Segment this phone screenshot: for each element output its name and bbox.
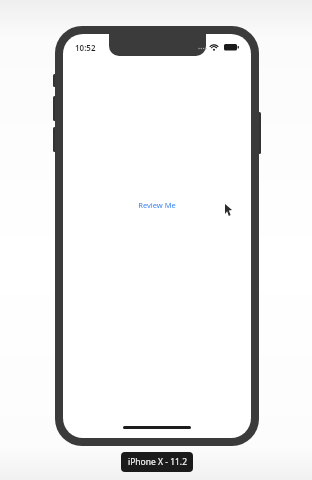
staticText: 10:52 [75, 42, 96, 53]
other: Pointer [225, 204, 233, 216]
staticText: Review Me [138, 200, 176, 210]
button[interactable]: iPhone X - 11.2 [121, 452, 193, 472]
button[interactable]: Review Me [132, 196, 182, 214]
staticText: iPhone X - 11.2 [128, 456, 187, 468]
